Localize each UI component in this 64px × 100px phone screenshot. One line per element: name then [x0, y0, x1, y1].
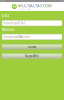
staticText: el portal de tus multas [18, 8, 31, 10]
staticText: Introduzca D.N.I. [3, 21, 26, 25]
button[interactable]: Introduzca D.N.I. [2, 20, 62, 26]
staticText: D.N.I. [2, 14, 10, 18]
staticText: Introduzca Matricula [3, 35, 29, 39]
staticText: Matricula [2, 28, 15, 31]
staticText: Nueva Web [25, 54, 39, 58]
button[interactable]: Nueva Web [2, 54, 62, 59]
button[interactable]: Introduzca Matricula [2, 34, 62, 40]
staticText: MULTIALTAS.COM [18, 3, 52, 8]
button[interactable]: Buscar [2, 44, 62, 49]
staticText: Buscar [28, 45, 36, 49]
